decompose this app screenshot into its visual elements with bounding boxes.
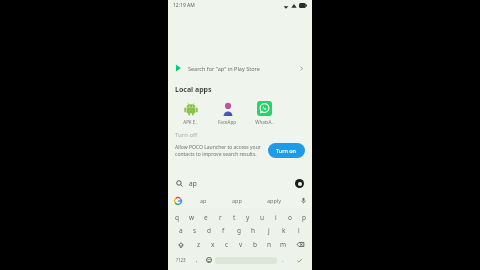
button[interactable]: z [191, 237, 206, 252]
staticText: FaceApp [218, 119, 236, 125]
button[interactable]: . [277, 252, 289, 268]
staticText: x [211, 240, 215, 249]
button[interactable]: i [269, 211, 283, 224]
button[interactable]: n [262, 237, 276, 252]
other: Open [298, 65, 305, 72]
staticText: d [207, 226, 211, 235]
staticText: Turn on [276, 147, 297, 154]
staticText: Search for "ap" in Play Store [188, 65, 260, 72]
button[interactable]: app [232, 197, 242, 204]
button[interactable]: w [184, 211, 199, 224]
button[interactable]: Google [173, 196, 182, 205]
staticText: m [280, 240, 287, 249]
staticText: a [179, 226, 183, 235]
staticText: w [189, 213, 195, 222]
staticText: n [267, 240, 272, 249]
button[interactable]: c [220, 237, 234, 252]
button[interactable]: Search [168, 173, 312, 193]
staticText: u [260, 213, 265, 222]
other: Search [176, 180, 183, 187]
button[interactable]: k [276, 224, 291, 237]
button[interactable]: y [241, 211, 255, 224]
staticText: g [237, 226, 241, 235]
button[interactable]: g [231, 224, 246, 237]
staticText: . [282, 256, 284, 264]
staticText: ?123 [176, 257, 186, 263]
staticText: f [222, 226, 225, 235]
button[interactable]: s [188, 224, 202, 237]
button[interactable]: j [261, 224, 276, 237]
staticText: ap [189, 179, 197, 188]
button[interactable]: Turn on [268, 143, 305, 158]
button[interactable]: Voice search [300, 197, 307, 204]
button[interactable]: r [213, 211, 227, 224]
button[interactable]: ?123 [171, 252, 191, 268]
button[interactable]: Search for "ap" in Play Store [168, 59, 312, 77]
button[interactable]: , [191, 252, 203, 268]
button[interactable]: x [206, 237, 220, 252]
staticText: v [239, 240, 243, 249]
button[interactable]: v [234, 237, 248, 252]
button[interactable]: q [169, 211, 184, 224]
staticText: Turn off [175, 131, 198, 139]
button[interactable]: APK E.. [175, 100, 205, 125]
button[interactable]: Clear [295, 179, 304, 188]
button[interactable]: m [276, 237, 290, 252]
staticText: h [251, 226, 256, 235]
staticText: l [298, 226, 300, 235]
staticText: z [197, 240, 201, 249]
button[interactable]: Shift [170, 237, 191, 252]
staticText: o [288, 213, 292, 222]
staticText: WhatsA.. [255, 119, 274, 125]
staticText: c [225, 240, 229, 249]
button[interactable]: u [255, 211, 269, 224]
staticText: r [219, 213, 222, 222]
staticText: y [246, 213, 250, 222]
staticText: Local apps [175, 85, 212, 95]
button[interactable]: f [216, 224, 231, 237]
button[interactable]: ap [200, 197, 207, 204]
button[interactable]: WhatsA.. [249, 100, 279, 125]
staticText: APK E.. [183, 119, 198, 125]
button[interactable]: h [246, 224, 261, 237]
button[interactable]: p [297, 211, 311, 224]
button[interactable]: b [248, 237, 262, 252]
staticText: Allow POCO Launcher to access your conta… [175, 144, 262, 158]
staticText: e [204, 213, 208, 222]
button[interactable]: Emoji [203, 252, 215, 268]
staticText: i [275, 213, 277, 222]
staticText: t [233, 213, 236, 222]
button[interactable]: Enter [289, 252, 309, 268]
button[interactable]: d [202, 224, 216, 237]
button[interactable]: a [174, 224, 188, 237]
button[interactable]: e [199, 211, 213, 224]
staticText: q [175, 213, 179, 222]
button[interactable]: o [283, 211, 297, 224]
button[interactable]: apply [267, 197, 282, 204]
staticText: 12:19 AM [173, 2, 195, 9]
button[interactable]: FaceApp [212, 100, 242, 125]
staticText: p [302, 213, 306, 222]
button[interactable]: Backspace [290, 237, 310, 252]
staticText: j [268, 226, 270, 235]
button[interactable]: l [291, 224, 306, 237]
staticText: , [196, 256, 198, 264]
staticText: s [193, 226, 197, 235]
staticText: k [282, 226, 286, 235]
staticText: b [253, 240, 257, 249]
button[interactable]: t [227, 211, 241, 224]
